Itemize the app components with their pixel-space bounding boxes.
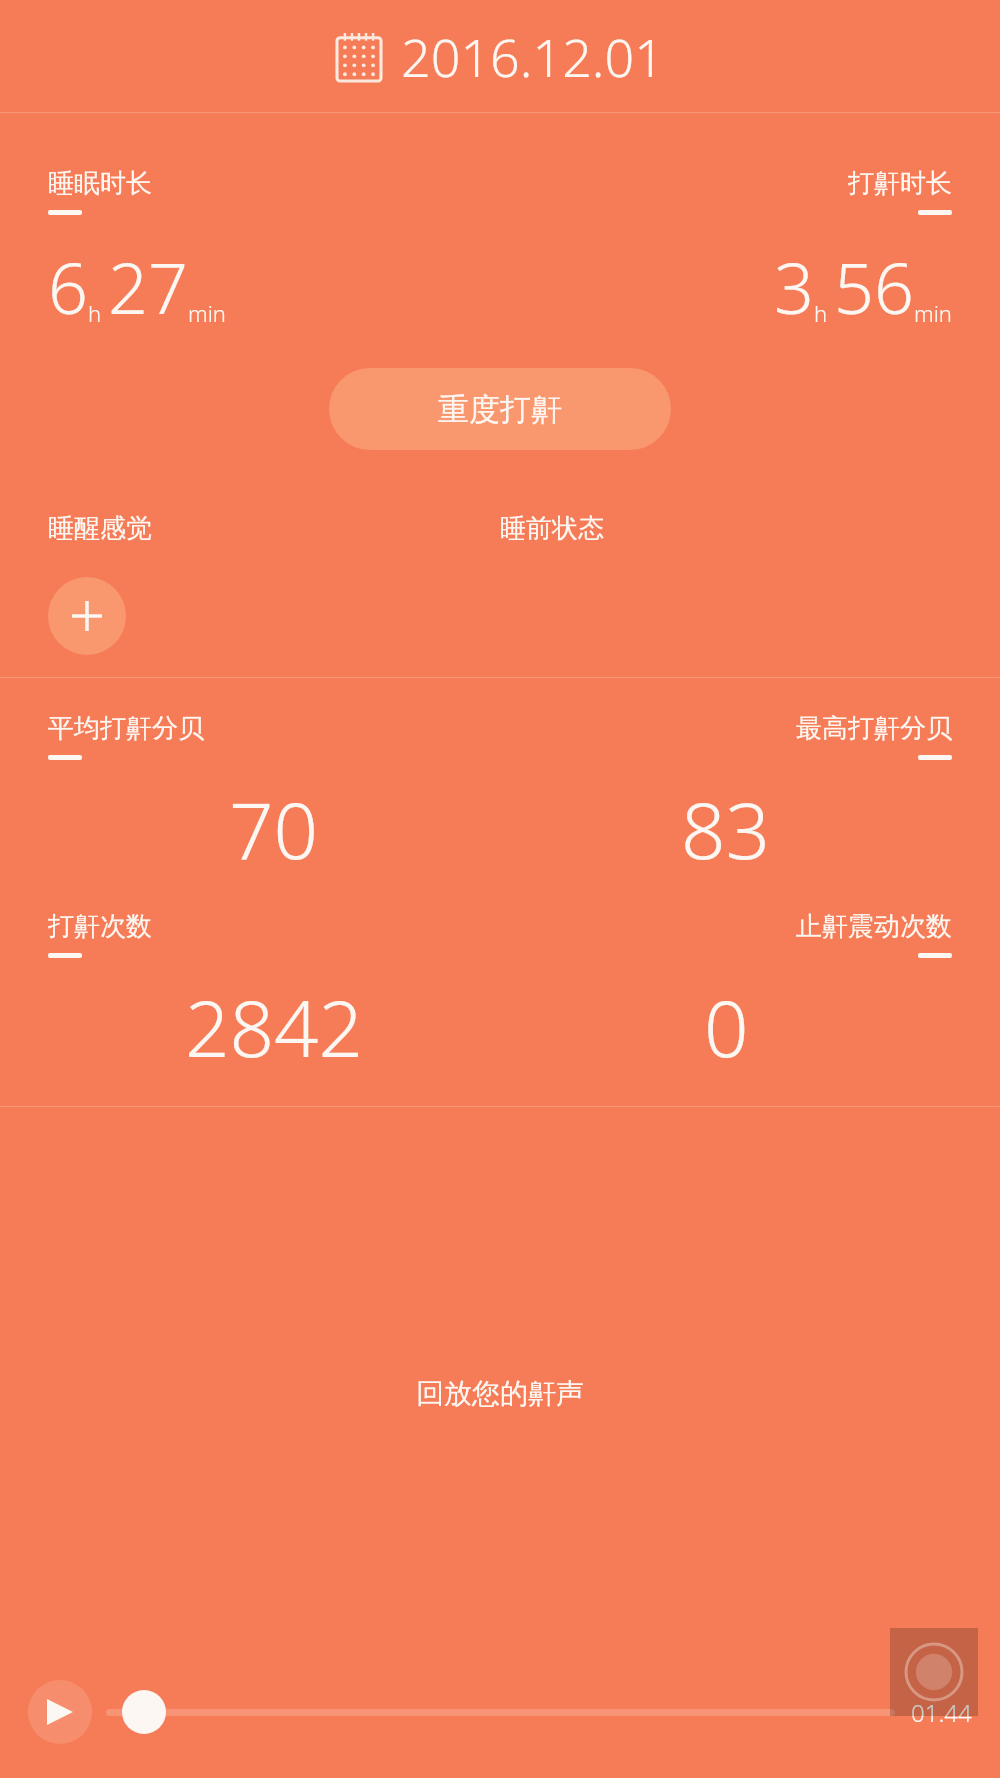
staticText: 2842 [185,974,364,1080]
staticText: 27 [108,239,188,334]
staticText: min [188,298,226,328]
staticText: 打鼾次数 [48,910,152,943]
staticText: 回放您的鼾声 [0,1376,1000,1411]
staticText: 平均打鼾分贝 [48,712,204,745]
staticText: 2016.12.01 [401,21,664,92]
staticText: 70 [229,776,319,882]
button[interactable]: 重度打鼾 [329,368,671,450]
staticText: h [814,298,828,328]
staticText: 6 [48,239,88,334]
staticText: 最高打鼾分贝 [796,712,952,745]
staticText: 0 [704,974,749,1080]
staticText: 重度打鼾 [438,390,562,429]
button[interactable]: Seek [122,1690,166,1734]
staticText: 83 [681,776,771,882]
staticText: 3 [774,239,814,334]
staticText: 止鼾震动次数 [796,910,952,943]
button[interactable]: Calendar [0,0,1000,112]
staticText: 56 [834,239,914,334]
staticText: 01.44 [911,1696,972,1729]
staticText: h [88,298,102,328]
staticText: 打鼾时长 [848,167,952,200]
staticText: 睡醒感觉 [48,512,152,545]
other: Calendar [337,33,381,81]
button[interactable]: Play [28,1680,92,1744]
staticText: 睡眠时长 [48,167,152,200]
button[interactable]: Add [48,577,126,655]
staticText: 睡前状态 [500,512,604,545]
staticText: min [914,298,952,328]
